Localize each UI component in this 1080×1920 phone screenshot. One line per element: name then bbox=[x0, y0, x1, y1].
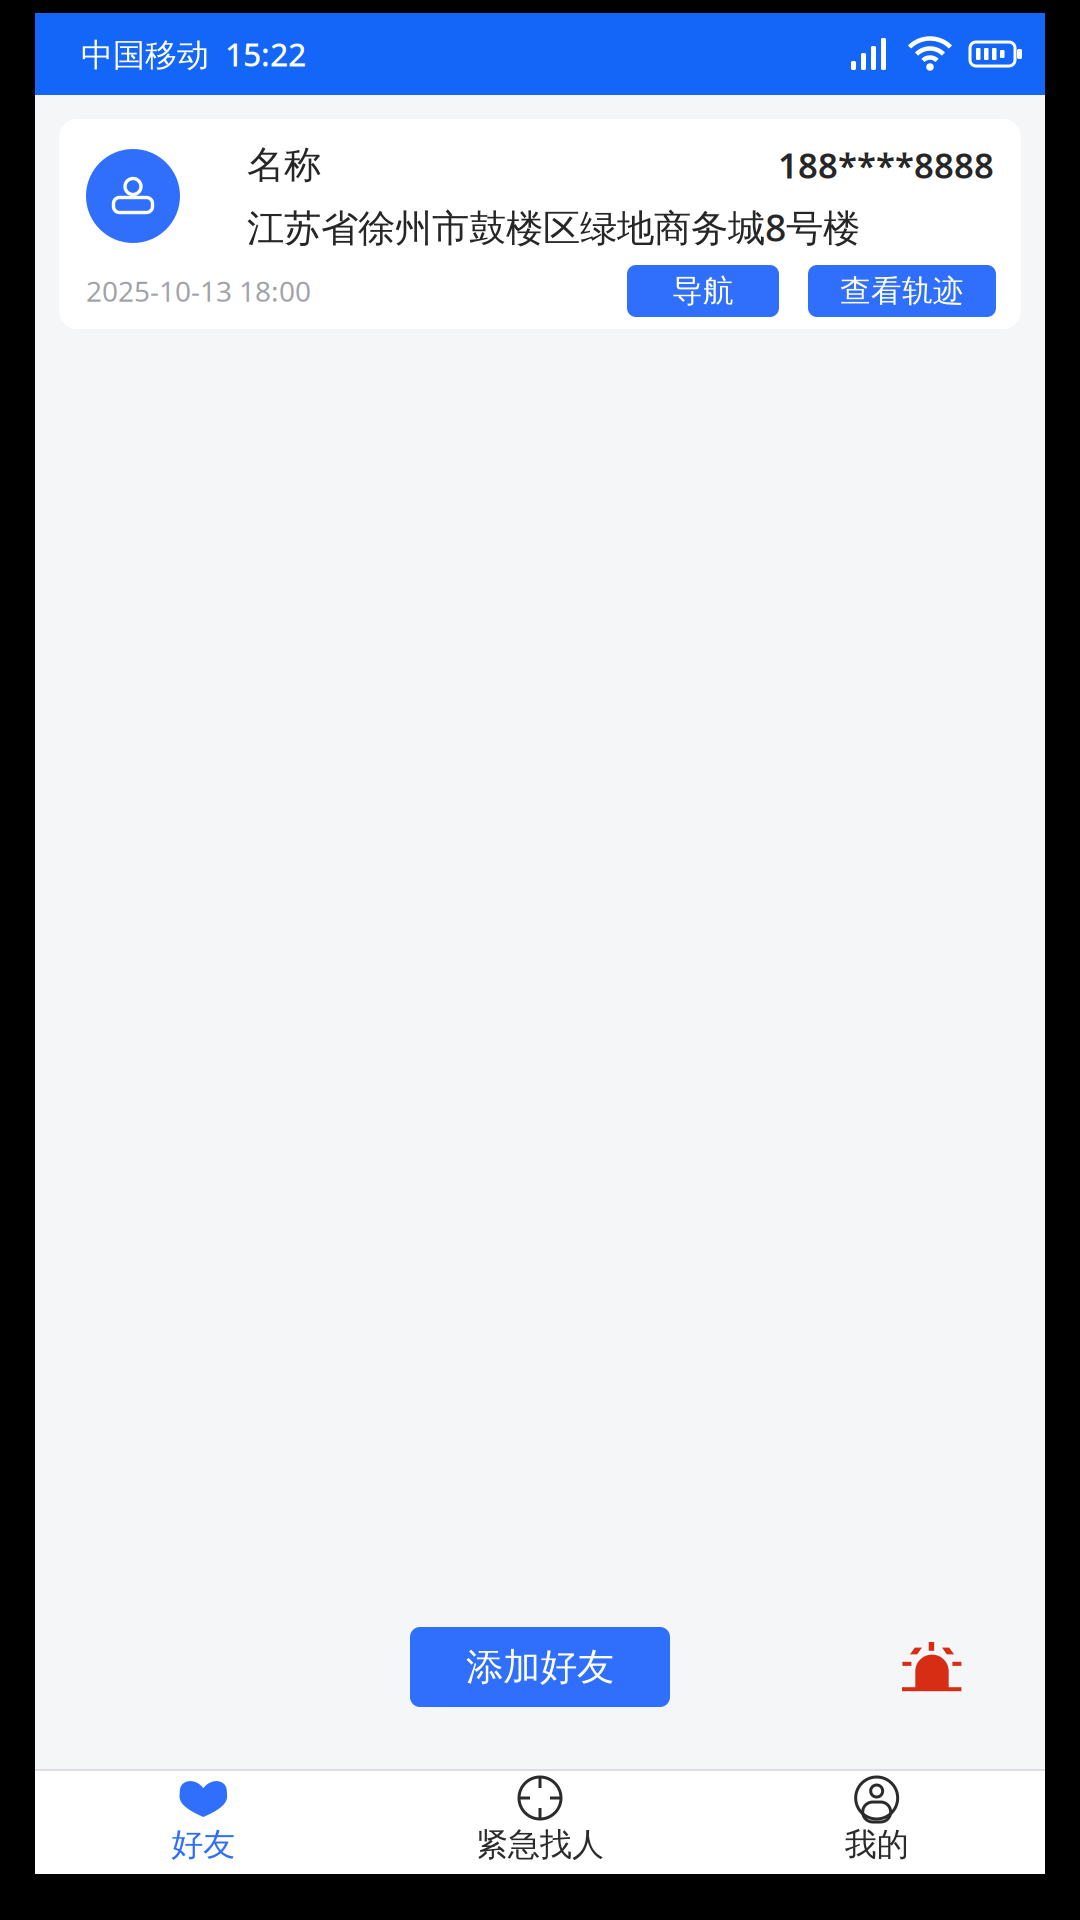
staticText: 江苏省徐州市鼓楼区绿地商务城8号楼 bbox=[247, 202, 860, 252]
staticText: 我的 bbox=[845, 1825, 909, 1864]
button[interactable]: 紧急找人 bbox=[372, 1771, 708, 1874]
staticText: 名称 bbox=[247, 142, 321, 188]
staticText: 好友 bbox=[171, 1825, 235, 1864]
button[interactable]: 添加好友 bbox=[410, 1627, 670, 1707]
staticText: 中国移动 15:22 bbox=[81, 33, 306, 75]
staticText: 紧急找人 bbox=[476, 1825, 604, 1864]
staticText: 导航 bbox=[672, 272, 734, 310]
button[interactable]: 查看轨迹 bbox=[808, 265, 996, 317]
button[interactable]: 我的 bbox=[708, 1771, 1045, 1874]
staticText: 查看轨迹 bbox=[840, 272, 964, 310]
button[interactable]: 好友 bbox=[35, 1771, 372, 1874]
button[interactable]: 一键报警 bbox=[893, 1627, 971, 1707]
staticText: 添加好友 bbox=[466, 1644, 614, 1690]
staticText: 2025-10-13 18:00 bbox=[86, 272, 311, 310]
staticText: 188****8888 bbox=[778, 142, 994, 188]
button[interactable]: 导航 bbox=[627, 265, 779, 317]
